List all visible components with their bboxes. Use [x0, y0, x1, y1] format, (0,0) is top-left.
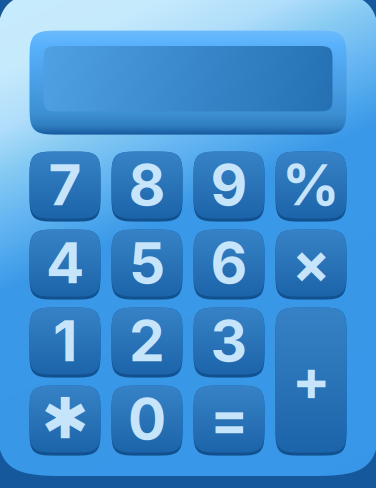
- staticText: ✱: [41, 386, 88, 452]
- staticText: 8: [128, 150, 165, 219]
- button[interactable]: =: [193, 386, 264, 456]
- button[interactable]: 6: [193, 230, 264, 300]
- button[interactable]: ✱: [29, 386, 100, 456]
- button[interactable]: 0: [111, 386, 182, 456]
- button[interactable]: 3: [193, 308, 264, 378]
- staticText: 5: [129, 228, 165, 297]
- button[interactable]: 5: [111, 230, 182, 300]
- staticText: 9: [210, 150, 247, 219]
- staticText: 7: [48, 150, 81, 219]
- staticText: =: [210, 384, 248, 453]
- button[interactable]: ×: [275, 230, 346, 300]
- button[interactable]: 2: [111, 308, 182, 378]
- button[interactable]: %: [275, 152, 346, 222]
- staticText: ×: [292, 228, 330, 297]
- staticText: +: [292, 345, 330, 414]
- button[interactable]: 8: [111, 152, 182, 222]
- staticText: 4: [46, 228, 84, 297]
- button[interactable]: 4: [29, 230, 100, 300]
- button[interactable]: +: [275, 308, 346, 456]
- button[interactable]: 1: [29, 308, 100, 378]
- staticText: 0: [128, 384, 166, 453]
- staticText: %: [282, 150, 340, 219]
- staticText: 2: [129, 306, 165, 375]
- staticText: 1: [53, 306, 77, 375]
- button[interactable]: 7: [29, 152, 100, 222]
- staticText: 6: [210, 228, 247, 297]
- staticText: 3: [210, 306, 247, 375]
- button[interactable]: 9: [193, 152, 264, 222]
